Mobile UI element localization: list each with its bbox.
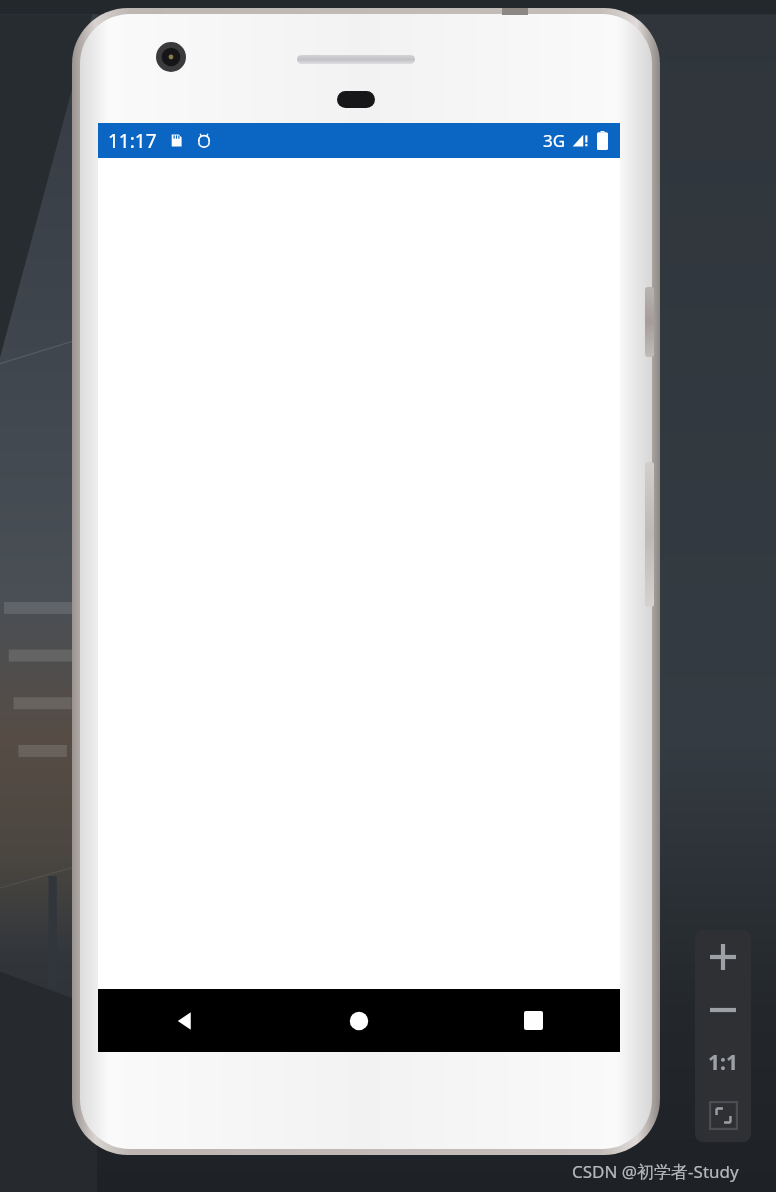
other: Power button [645, 287, 654, 357]
staticText: 1:1 [708, 1048, 738, 1077]
staticText: 11:17 [108, 128, 157, 154]
button[interactable]: Home [272, 989, 446, 1052]
button[interactable]: Fit to screen [695, 1089, 751, 1142]
button[interactable]: Zoom in [695, 930, 751, 983]
button[interactable]: Actual size [695, 1036, 751, 1089]
staticText: CSDN @初学者-Study [572, 1160, 739, 1183]
button[interactable]: Zoom out [695, 983, 751, 1036]
button[interactable]: Back [98, 989, 272, 1052]
other: Volume rocker [645, 462, 654, 607]
staticText: 3G [543, 129, 566, 152]
button[interactable]: Recent apps [446, 989, 620, 1052]
